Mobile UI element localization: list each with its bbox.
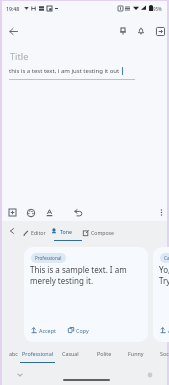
button[interactable]: Casual <box>58 348 83 363</box>
button[interactable]: Pin note <box>115 23 131 39</box>
staticText: Accept <box>39 327 56 334</box>
staticText: Casual <box>164 255 169 261</box>
staticText: Editor <box>31 229 46 236</box>
staticText: Accept <box>168 327 169 334</box>
button[interactable]: Copy <box>66 324 91 336</box>
button[interactable]: Back <box>5 224 19 238</box>
button[interactable]: Professional <box>20 348 55 363</box>
staticText: Professional <box>35 255 62 261</box>
button[interactable]: Add item <box>5 205 20 220</box>
staticText: abc <box>9 350 18 357</box>
button[interactable]: More options <box>154 205 169 220</box>
button[interactable]: Social <box>156 348 169 363</box>
button[interactable]: Hide keyboard <box>13 368 27 382</box>
staticText: Compose <box>91 229 115 236</box>
staticText: Polite <box>97 350 112 357</box>
button[interactable]: Text formatting <box>42 205 57 220</box>
staticText: This is a sample text. I am merely testi… <box>30 264 131 286</box>
staticText: Copy <box>76 327 89 334</box>
button[interactable]: Accept <box>29 324 58 336</box>
button[interactable]: Casual <box>153 247 169 342</box>
staticText: 95% <box>153 6 162 12</box>
staticText: Title <box>10 50 29 63</box>
button[interactable]: Tone <box>49 222 82 242</box>
staticText: Funny <box>128 350 144 357</box>
staticText: this is a test text, i am just testing i… <box>9 67 120 75</box>
button[interactable]: Polite <box>94 348 115 363</box>
button[interactable]: Compose <box>83 222 118 242</box>
button[interactable]: Accept <box>158 324 169 336</box>
staticText: Professional <box>22 350 54 357</box>
button[interactable]: abc <box>6 348 21 363</box>
button[interactable]: Add to note <box>152 23 168 39</box>
button[interactable]: Reminder <box>133 23 149 39</box>
staticText: Tone <box>60 228 72 235</box>
button[interactable]: Background colour <box>23 205 38 220</box>
staticText: 19:48 <box>6 5 20 12</box>
staticText: Casual <box>62 350 79 357</box>
button[interactable]: Undo <box>70 205 85 220</box>
button[interactable]: Funny <box>125 348 147 363</box>
staticText: Social <box>160 350 169 357</box>
button[interactable]: Editor <box>23 222 50 242</box>
button[interactable]: Emoji <box>143 368 157 382</box>
button[interactable]: Professional <box>24 247 148 342</box>
staticText: Yo, just testing this out! Try it yourse… <box>159 264 169 286</box>
button[interactable]: Back <box>4 22 22 40</box>
